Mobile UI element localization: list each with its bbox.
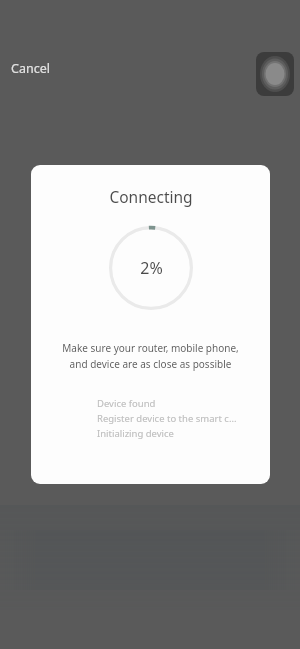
- staticText: Initializing device: [97, 427, 174, 440]
- staticText: Register device to the smart c...: [97, 412, 237, 425]
- staticText: Make sure your router, mobile phone, and…: [53, 341, 248, 370]
- staticText: Device found: [97, 397, 156, 410]
- staticText: Cancel: [11, 60, 50, 77]
- staticText: Connecting: [109, 186, 193, 207]
- button[interactable]: Cancel: [2, 54, 59, 83]
- button[interactable]: Device image: [256, 52, 294, 96]
- staticText: 2%: [140, 257, 163, 279]
